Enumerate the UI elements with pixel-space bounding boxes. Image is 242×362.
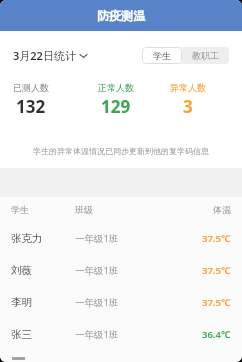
staticText: 已测人数 xyxy=(13,82,49,93)
staticText: 异常人数 xyxy=(170,82,206,93)
staticText: 防疫测温 xyxy=(97,8,145,23)
staticText: 一年级1班 xyxy=(75,296,119,309)
button[interactable]: 张克力 xyxy=(0,222,242,254)
staticText: 学生的异常体温情况已同步更新到他的复学码信息 xyxy=(33,146,209,156)
staticText: 一年级1班 xyxy=(75,264,119,277)
staticText: 体温 xyxy=(213,204,231,215)
staticText: 37.5℃ xyxy=(202,232,231,245)
staticText: 37.5℃ xyxy=(202,296,231,309)
staticText: 班级 xyxy=(75,204,93,215)
staticText: 刘薇 xyxy=(11,264,75,277)
staticText: 李明 xyxy=(11,296,75,309)
button[interactable]: 李明 xyxy=(0,286,242,318)
staticText: 36.4℃ xyxy=(202,328,231,341)
button[interactable]: 学生 xyxy=(142,47,182,64)
staticText: 一年级1班 xyxy=(75,328,119,341)
staticText: 37.5℃ xyxy=(202,264,231,277)
staticText: 3月22日统计 xyxy=(13,48,76,63)
staticText: 学生 xyxy=(153,50,171,61)
button[interactable]: 3月22日统计 xyxy=(13,48,87,63)
staticText: 3 xyxy=(183,95,193,118)
staticText: 132 xyxy=(16,95,46,118)
staticText: 129 xyxy=(101,95,131,118)
staticText: 张克力 xyxy=(11,232,75,245)
button[interactable]: 刘薇 xyxy=(0,254,242,286)
staticText: 张三 xyxy=(11,328,75,341)
staticText: 正常人数 xyxy=(98,82,134,93)
staticText: 一年级1班 xyxy=(75,232,119,245)
staticText: 教职工 xyxy=(192,50,219,61)
button[interactable]: 张三 xyxy=(0,318,242,350)
staticText: 学生 xyxy=(11,204,75,215)
button[interactable]: 教职工 xyxy=(182,47,229,64)
